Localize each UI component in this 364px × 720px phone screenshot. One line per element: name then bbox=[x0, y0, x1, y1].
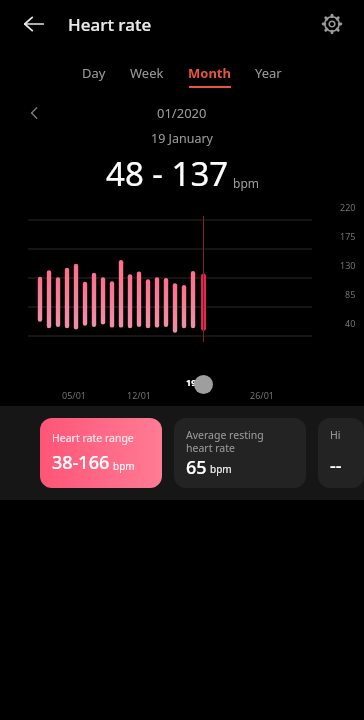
staticText: 12/01 bbox=[127, 389, 151, 401]
staticText: 130 bbox=[340, 259, 356, 271]
staticText: 26/01 bbox=[250, 389, 274, 401]
button[interactable]: Week bbox=[126, 62, 168, 90]
button[interactable]: Scrubber bbox=[194, 375, 213, 394]
staticText: 48 - 137 bbox=[106, 151, 229, 196]
staticText: Month bbox=[188, 64, 231, 82]
button[interactable]: Back bbox=[14, 4, 54, 44]
staticText: 220 bbox=[340, 201, 356, 213]
staticText: Week bbox=[130, 64, 164, 82]
staticText: 19 January bbox=[0, 130, 364, 147]
staticText: bpm bbox=[233, 175, 259, 191]
staticText: 85 bbox=[345, 288, 356, 300]
button[interactable]: Settings bbox=[312, 4, 352, 44]
staticText: Hi bbox=[330, 428, 341, 442]
staticText: 01/2020 bbox=[157, 104, 207, 122]
staticText: bpm bbox=[113, 459, 135, 473]
button[interactable]: Previous month bbox=[20, 102, 50, 124]
staticText: 40 bbox=[345, 317, 356, 329]
staticText: -- bbox=[330, 453, 342, 478]
staticText: Day bbox=[82, 64, 106, 82]
staticText: bpm bbox=[210, 462, 232, 476]
staticText: 05/01 bbox=[62, 389, 86, 401]
button[interactable]: Year bbox=[251, 62, 286, 90]
staticText: 19/01 bbox=[186, 376, 211, 388]
button[interactable]: Average resting heart rate bbox=[174, 418, 306, 488]
button[interactable]: Month bbox=[184, 62, 235, 90]
staticText: Year bbox=[255, 64, 282, 82]
staticText: 65 bbox=[186, 455, 207, 478]
staticText: 38-166 bbox=[52, 450, 110, 475]
button[interactable]: Day bbox=[78, 62, 110, 90]
staticText: Heart rate range bbox=[52, 431, 134, 445]
button[interactable]: Hi bbox=[318, 418, 364, 488]
staticText: Heart rate bbox=[68, 13, 152, 36]
button[interactable]: Heart rate range bbox=[40, 418, 162, 488]
staticText: 175 bbox=[340, 230, 356, 242]
staticText: Average resting heart rate bbox=[186, 428, 264, 455]
